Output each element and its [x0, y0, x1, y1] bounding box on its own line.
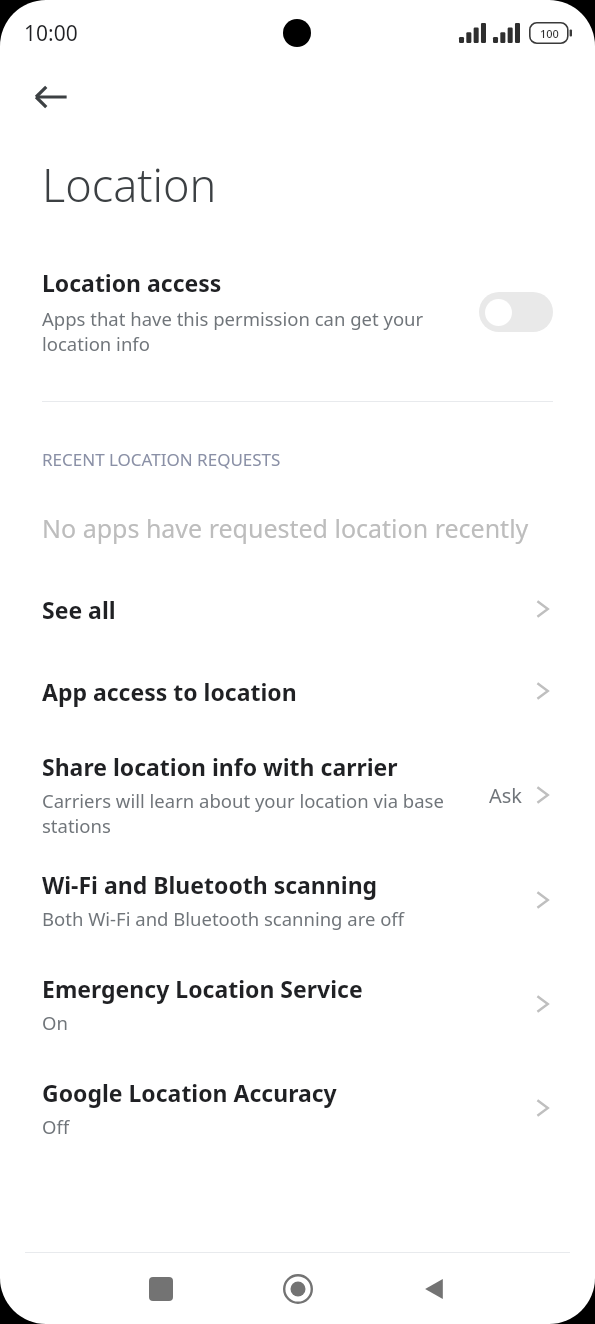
- button[interactable]: Recents: [92, 1253, 229, 1324]
- button[interactable]: Location access toggle: [479, 292, 553, 332]
- staticText: Location: [42, 154, 217, 215]
- button[interactable]: Back: [366, 1253, 503, 1324]
- staticText: Location access: [42, 267, 222, 298]
- button[interactable]: Emergency Location Service: [0, 973, 595, 1035]
- staticText: App access to location: [42, 676, 533, 707]
- button[interactable]: Google Location Accuracy: [0, 1077, 595, 1139]
- button[interactable]: Home: [229, 1253, 366, 1324]
- staticText: Carriers will learn about your location …: [42, 788, 481, 839]
- staticText: Apps that have this permission can get y…: [42, 306, 465, 357]
- button[interactable]: See all: [0, 593, 595, 625]
- staticText: 10:00: [24, 19, 78, 48]
- staticText: Share location info with carrier: [42, 751, 398, 782]
- button[interactable]: Wi-Fi and Bluetooth scanning: [0, 869, 595, 931]
- staticText: RECENT LOCATION REQUESTS: [42, 448, 281, 471]
- staticText: Wi-Fi and Bluetooth scanning: [42, 869, 378, 900]
- button[interactable]: Share location info with carrier: [0, 751, 595, 839]
- staticText: Both Wi-Fi and Bluetooth scanning are of…: [42, 906, 405, 931]
- staticText: Off: [42, 1114, 70, 1139]
- button[interactable]: Location access: [0, 267, 595, 357]
- staticText: 100: [540, 26, 559, 41]
- staticText: Emergency Location Service: [42, 973, 363, 1004]
- staticText: Ask: [489, 782, 523, 809]
- staticText: See all: [42, 594, 533, 625]
- staticText: Google Location Accuracy: [42, 1077, 337, 1108]
- staticText: On: [42, 1010, 68, 1035]
- button[interactable]: Back: [26, 72, 76, 122]
- staticText: No apps have requested location recently: [42, 511, 529, 545]
- button[interactable]: App access to location: [0, 675, 595, 707]
